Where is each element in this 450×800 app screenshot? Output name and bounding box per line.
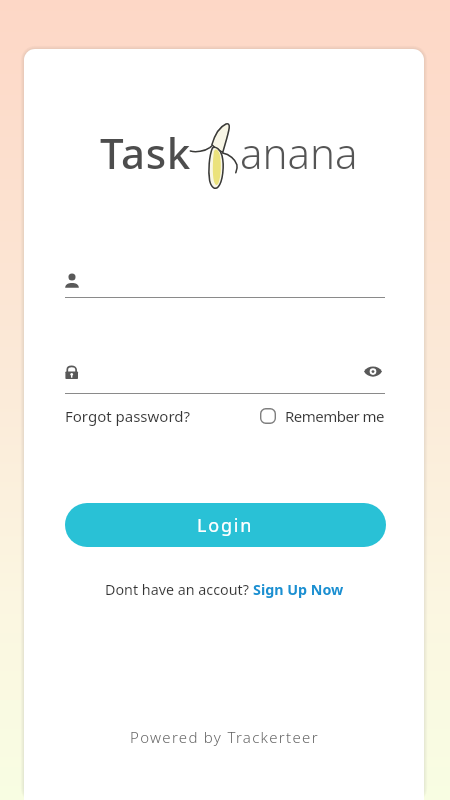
button[interactable]: Forgot password? [65, 406, 191, 426]
staticText: Task [100, 124, 191, 181]
button[interactable]: Login [65, 503, 386, 547]
button[interactable]: Remember me [260, 406, 385, 426]
staticText: Dont have an accout? [105, 580, 253, 599]
button[interactable]: Sign Up Now [253, 580, 344, 599]
staticText: anana [240, 124, 358, 181]
staticText: Remember me [285, 406, 385, 426]
staticText: Powered by Trackerteer [130, 727, 319, 747]
staticText: Login [197, 513, 254, 538]
button[interactable]: Show password [364, 361, 385, 381]
